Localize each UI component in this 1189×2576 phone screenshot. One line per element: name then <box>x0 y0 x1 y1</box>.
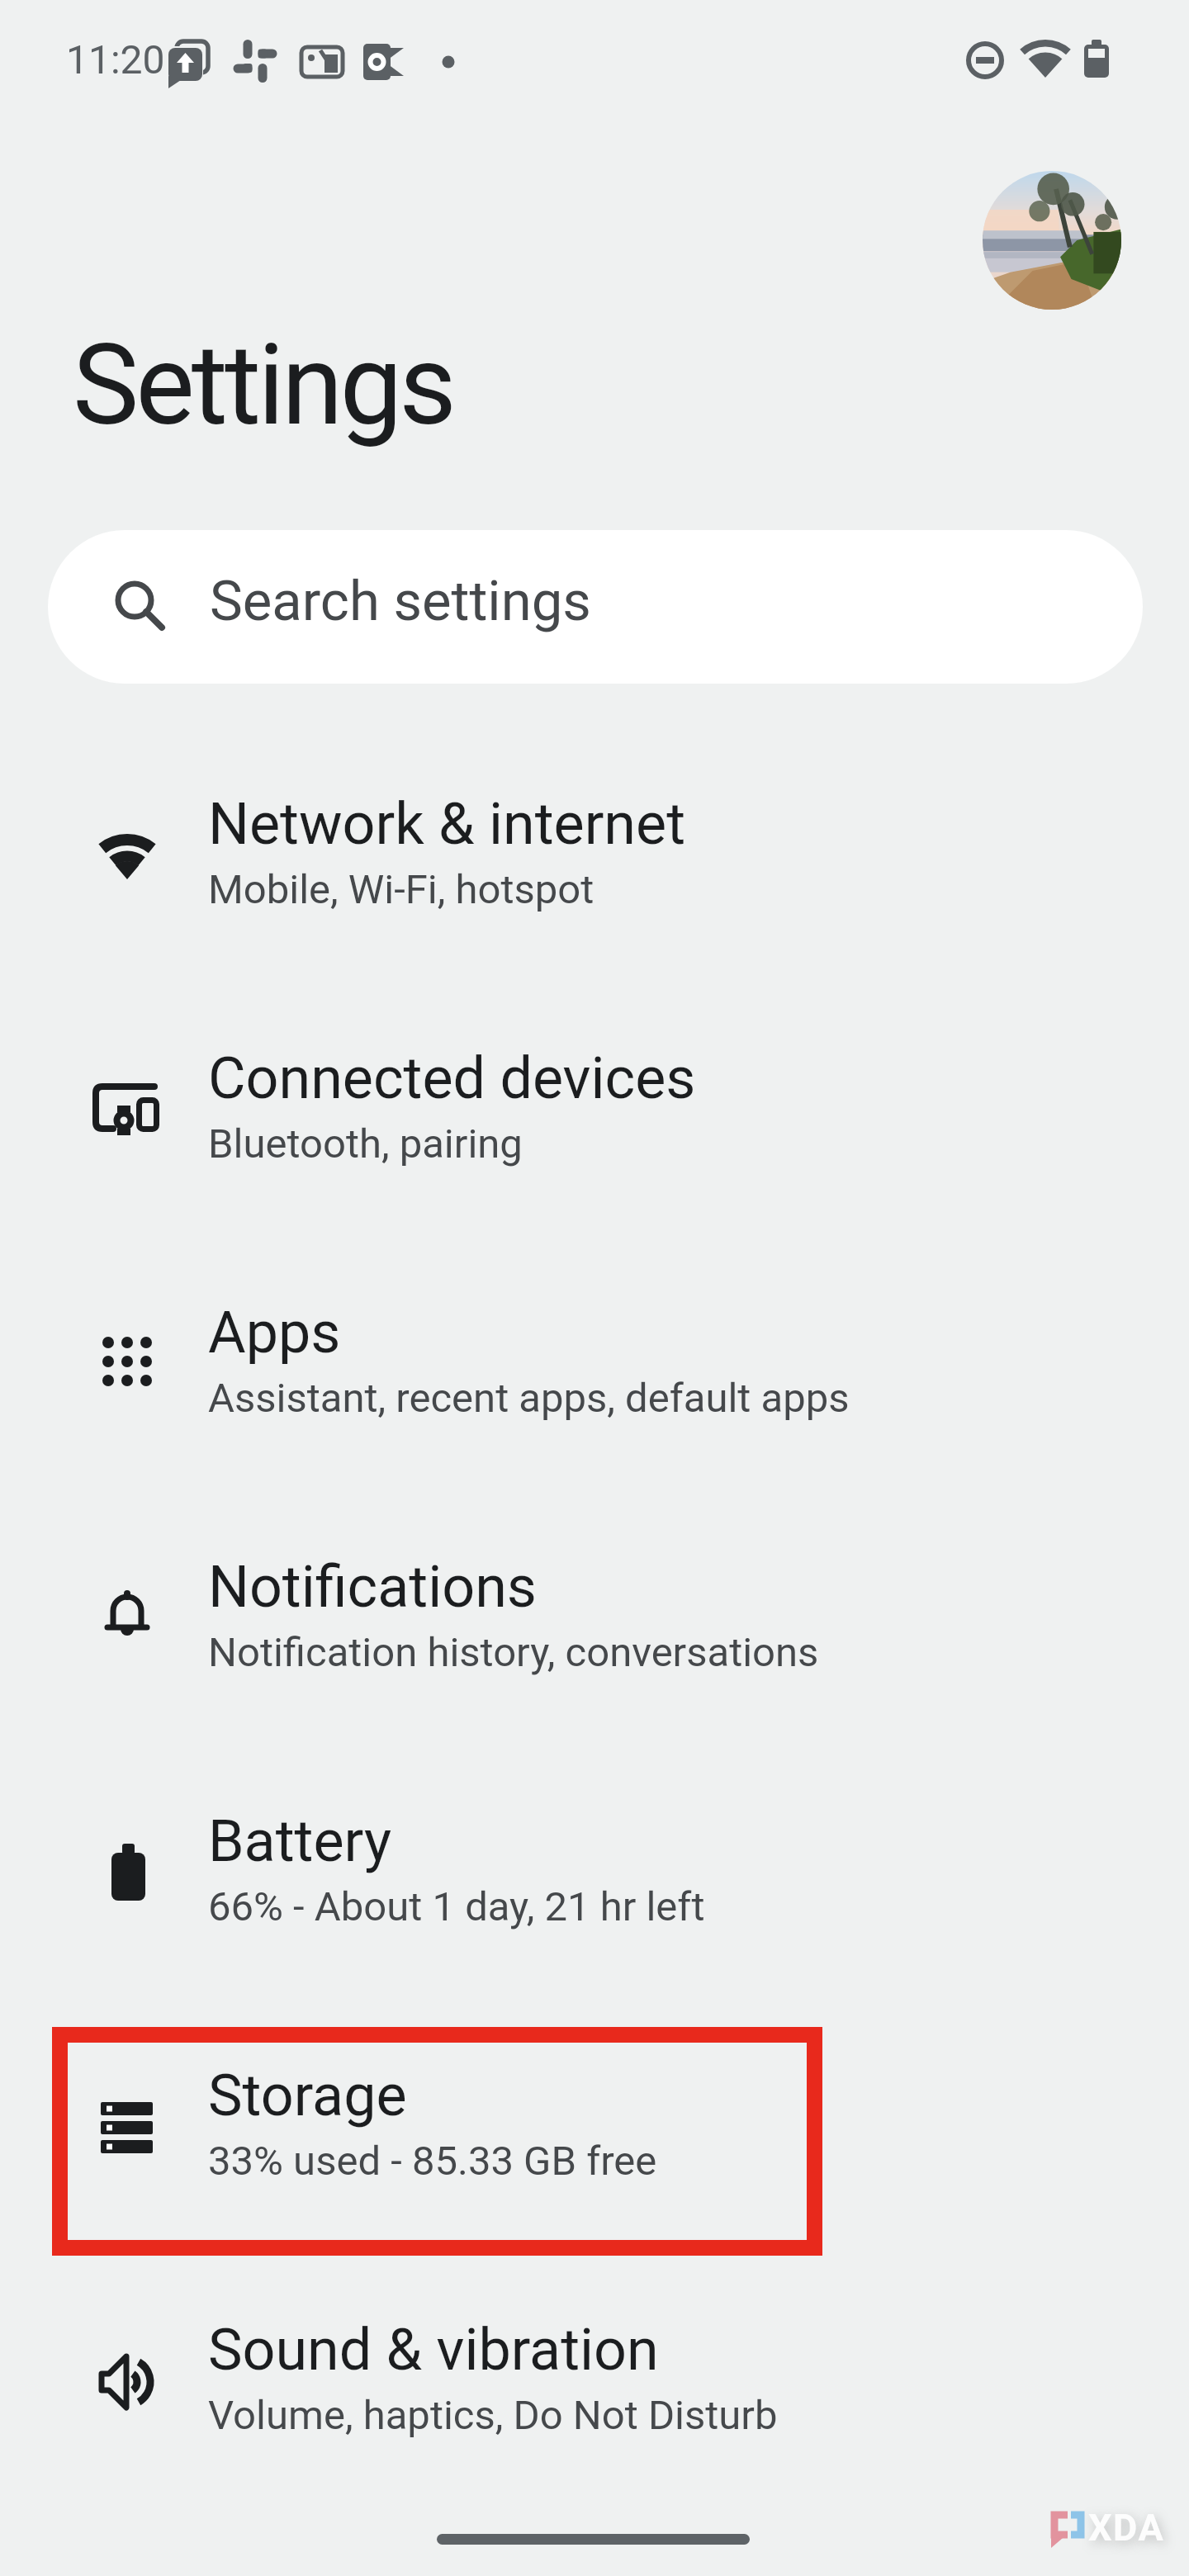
button[interactable]: Search settings <box>48 530 1143 684</box>
staticText: Notification history, conversations <box>208 1629 819 1676</box>
staticText: XDA <box>1088 2506 1165 2550</box>
button[interactable]: Sound & vibration <box>0 2245 1189 2499</box>
button[interactable]: Notifications <box>0 1482 1189 1736</box>
button[interactable]: Battery <box>0 1736 1189 1991</box>
staticText: Notifications <box>208 1553 537 1621</box>
button[interactable]: Network & internet <box>0 719 1189 973</box>
staticText: Volume, haptics, Do Not Disturb <box>208 2392 778 2439</box>
staticText: Mobile, Wi-Fi, hotspot <box>208 866 594 913</box>
staticText: 11:20 <box>66 36 165 83</box>
staticText: Network & internet <box>208 790 686 858</box>
staticText: Settings <box>73 320 453 451</box>
staticText: Bluetooth, pairing <box>208 1120 523 1167</box>
button[interactable]: Connected devices <box>0 973 1189 1228</box>
staticText: Connected devices <box>208 1044 696 1112</box>
button[interactable]: Apps <box>0 1228 1189 1482</box>
staticText: Sound & vibration <box>208 2316 659 2384</box>
staticText: Search settings <box>210 569 591 634</box>
staticText: Assistant, recent apps, default apps <box>208 1375 850 1422</box>
button[interactable]: Storage <box>0 1991 1189 2245</box>
staticText: Apps <box>208 1299 341 1366</box>
button[interactable] <box>983 171 1121 310</box>
staticText: Storage <box>208 2062 407 2129</box>
staticText: 33% used - 85.33 GB free <box>208 2138 657 2185</box>
staticText: 66% - About 1 day, 21 hr left <box>208 1883 705 1930</box>
staticText: Battery <box>208 1807 392 1875</box>
